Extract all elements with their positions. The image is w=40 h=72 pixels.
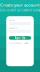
staticText: Already a member? bbox=[9, 42, 23, 44]
button[interactable]: Sign Up bbox=[9, 36, 31, 40]
staticText: Create your account bbox=[0, 2, 40, 8]
staticText: Full name bbox=[9, 19, 15, 21]
staticText: Join us and get started today bbox=[0, 8, 40, 12]
button[interactable]: Log in bbox=[24, 42, 28, 44]
staticText: Email address bbox=[9, 27, 19, 29]
staticText: Log in bbox=[24, 42, 28, 44]
staticText: Sign Up bbox=[14, 36, 25, 40]
